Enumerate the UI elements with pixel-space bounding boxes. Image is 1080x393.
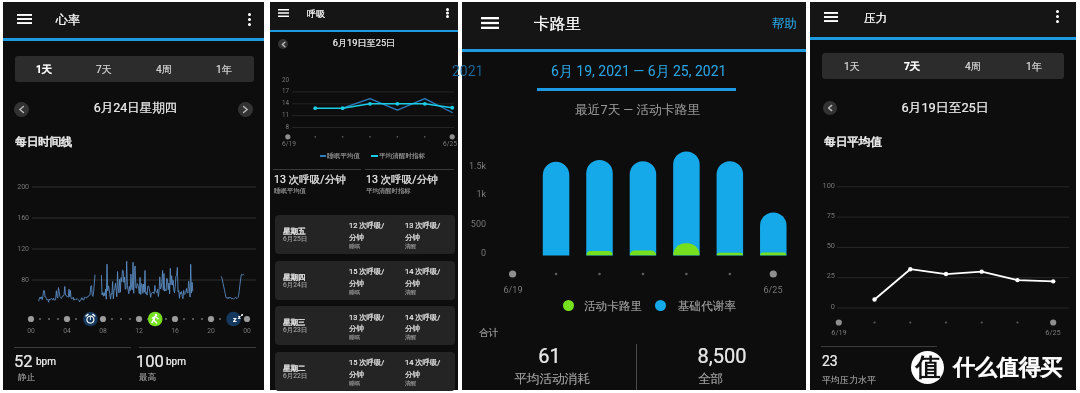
staticText: 星期二 [283, 364, 306, 373]
button[interactable]: 帮助 [767, 13, 802, 35]
staticText: 6月 19, 2021 — 6月 25, 2021 [551, 63, 727, 81]
staticText: 4周 [156, 63, 172, 76]
button[interactable]: Menu [819, 6, 843, 28]
staticText: 平均活动消耗 [502, 371, 602, 387]
staticText: 13 次呼吸/ [405, 221, 441, 230]
staticText: 100 [136, 352, 164, 371]
staticText: 星期三 [283, 318, 306, 327]
staticText: 6月25日 [283, 235, 308, 243]
staticText: 14 次呼吸/ [405, 358, 441, 367]
staticText: 分钟 [349, 233, 364, 242]
staticText: 每日平均值 [824, 135, 882, 149]
staticText: 基础代谢率 [678, 299, 736, 314]
button[interactable]: Menu [12, 8, 37, 30]
staticText: 呼吸 [307, 8, 326, 20]
staticText: 500 [462, 219, 486, 230]
staticText: 什么值得买 [953, 354, 1062, 381]
staticText: 分钟 [405, 324, 420, 333]
staticText: 平均压力水平 [822, 374, 876, 385]
button[interactable] [275, 261, 455, 300]
staticText: 13 次呼吸/分钟 [274, 173, 346, 186]
staticText: 全部 [687, 371, 734, 387]
staticText: 15 次呼吸/ [349, 267, 385, 276]
staticText: 200 [3, 183, 29, 191]
staticText: 清醒 [405, 289, 417, 296]
staticText: 100 [810, 181, 835, 190]
staticText: z [238, 314, 241, 320]
staticText: 00 [237, 327, 257, 335]
button[interactable]: Menu [273, 3, 294, 23]
staticText: 12 [129, 327, 149, 335]
button[interactable]: Previous day [14, 102, 29, 117]
staticText: 合计 [479, 327, 499, 339]
staticText: 睡眠 [349, 243, 361, 250]
staticText: 14 次呼吸/ [405, 313, 441, 322]
staticText: 6/25 [763, 285, 783, 296]
staticText: 6月23日 [283, 326, 308, 334]
button[interactable]: More options [239, 8, 259, 31]
button[interactable]: 7天 [74, 56, 134, 82]
staticText: 6月24日星期四 [5, 100, 266, 116]
staticText: 15 次呼吸/ [349, 358, 385, 367]
staticText: 卡路里 [534, 14, 582, 34]
staticText: 帮助 [772, 16, 797, 32]
staticText: 14 [270, 99, 289, 106]
staticText: 1年 [1026, 60, 1042, 73]
staticText: 6月22日 [283, 372, 308, 380]
staticText: 13 次呼吸/分钟 [366, 173, 438, 186]
staticText: 睡眠 [349, 289, 361, 296]
button[interactable]: Menu [476, 11, 504, 35]
staticText: 1年 [216, 63, 232, 76]
staticText: 7天 [904, 60, 921, 73]
button[interactable]: More options [437, 3, 457, 23]
staticText: 1天 [844, 60, 860, 73]
staticText: 50 [810, 241, 835, 250]
staticText: 分钟 [349, 324, 364, 333]
staticText: 6/19 [829, 328, 849, 337]
staticText: 6/25 [443, 140, 457, 148]
button[interactable]: 7天 [882, 53, 942, 79]
button[interactable]: 4周 [134, 56, 194, 82]
staticText: 睡眠平均值 [274, 187, 306, 195]
button[interactable]: Previous day [278, 39, 288, 49]
staticText: bpm [36, 356, 56, 368]
button[interactable] [275, 352, 455, 391]
staticText: 11 [270, 111, 289, 118]
button[interactable]: 4周 [942, 53, 1003, 79]
staticText: 活动卡路里 [584, 299, 642, 314]
staticText: 6月19日至25日 [270, 37, 458, 49]
staticText: 0 [462, 248, 486, 259]
staticText: 清醒 [405, 243, 417, 250]
button[interactable]: 1年 [194, 56, 254, 82]
staticText: 星期四 [283, 273, 306, 282]
staticText: 1天 [36, 63, 53, 76]
button[interactable]: Previous day [823, 101, 837, 115]
staticText: 04 [57, 327, 77, 335]
staticText: 每日时间线 [15, 135, 72, 149]
button[interactable]: 1年 [1003, 53, 1064, 79]
button[interactable]: Next day [238, 102, 253, 117]
staticText: 14 次呼吸/ [405, 267, 441, 276]
staticText: z [233, 316, 237, 324]
staticText: 80 [3, 276, 29, 284]
staticText: 20 [201, 327, 221, 335]
staticText: 7天 [96, 63, 112, 76]
staticText: 心率 [56, 12, 81, 27]
button[interactable]: More options [1047, 5, 1067, 28]
staticText: 平均清醒时指标 [366, 187, 411, 195]
button[interactable] [275, 306, 455, 345]
staticText: 160 [3, 214, 29, 222]
staticText: 1k [462, 189, 486, 200]
staticText: 2021 [452, 63, 484, 79]
button[interactable]: 1天 [822, 53, 882, 79]
staticText: 清醒 [405, 380, 417, 387]
staticText: 分钟 [349, 370, 364, 379]
staticText: 压力 [864, 11, 888, 26]
staticText: 6/19 [282, 140, 296, 148]
staticText: 17 [270, 87, 289, 94]
staticText: 120 [3, 245, 29, 253]
staticText: 分钟 [405, 279, 420, 288]
button[interactable]: 1天 [15, 56, 74, 82]
staticText: 13 次呼吸/ [349, 313, 385, 322]
button[interactable] [275, 215, 455, 254]
